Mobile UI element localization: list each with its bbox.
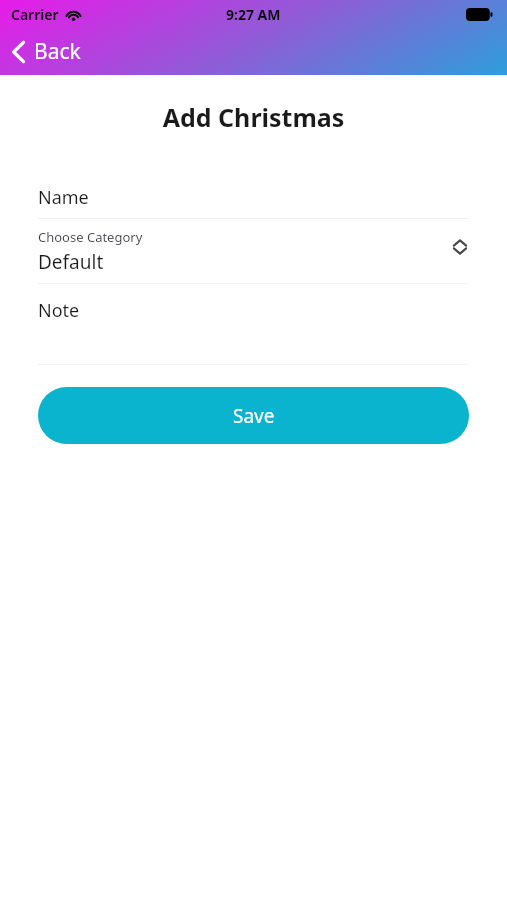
staticText: Add Christmas <box>0 100 507 134</box>
staticText: Carrier <box>11 5 59 24</box>
button[interactable]: Choose Category <box>38 219 469 283</box>
other: Choose category <box>451 236 469 258</box>
staticText: Back <box>34 37 81 66</box>
staticText: 9:27 AM <box>226 5 281 24</box>
staticText: Note <box>38 298 80 323</box>
button[interactable]: Name <box>38 176 469 218</box>
staticText: Default <box>38 249 104 275</box>
staticText: Choose Category <box>38 228 143 246</box>
button[interactable]: Back <box>0 28 97 75</box>
button[interactable]: Note <box>38 284 469 364</box>
staticText: Name <box>38 185 89 210</box>
staticText: Save <box>233 403 275 429</box>
button[interactable]: Save <box>38 387 469 444</box>
